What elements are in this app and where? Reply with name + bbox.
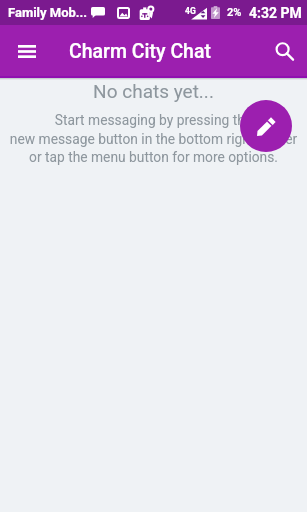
staticText: Start messaging by pressing the new mess… (0, 112, 307, 165)
button[interactable]: Menu (18, 39, 36, 65)
staticText: 4G (185, 6, 196, 16)
button[interactable]: Search (261, 25, 307, 78)
staticText: Family Mob... (8, 5, 88, 20)
staticText: No chats yet... (0, 80, 307, 102)
staticText: 4:32 PM (249, 5, 302, 21)
staticText: Charm City Chat (69, 40, 211, 63)
button[interactable]: New message (240, 100, 292, 152)
staticText: 2% (227, 6, 242, 19)
